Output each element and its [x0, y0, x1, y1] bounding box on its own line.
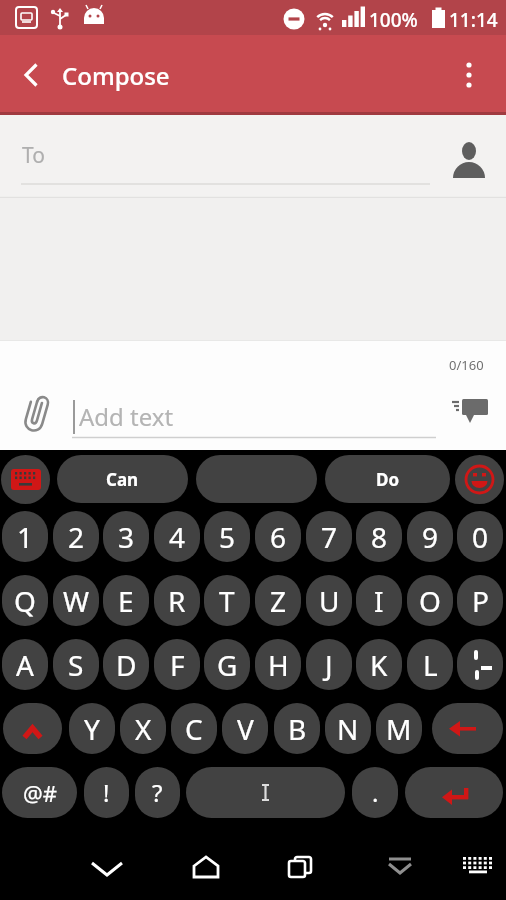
button[interactable]: N: [325, 703, 371, 754]
staticText: 11:14: [449, 7, 498, 33]
staticText: 4: [169, 518, 186, 556]
staticText: B: [288, 710, 307, 748]
button[interactable]: U: [306, 575, 352, 626]
button[interactable]: R: [154, 575, 200, 626]
staticText: M: [386, 710, 412, 748]
button[interactable]: [196, 455, 317, 503]
staticText: 9: [422, 518, 439, 556]
button[interactable]: 6: [255, 511, 301, 562]
button[interactable]: [378, 845, 422, 889]
button[interactable]: P: [457, 575, 503, 626]
button[interactable]: Z: [255, 575, 301, 626]
button[interactable]: [455, 455, 504, 504]
staticText: K: [370, 646, 388, 684]
staticText: Y: [84, 710, 100, 748]
button[interactable]: K: [356, 639, 402, 690]
button[interactable]: S: [53, 639, 99, 690]
button[interactable]: W: [53, 575, 99, 626]
staticText: W: [63, 582, 90, 620]
button[interactable]: 0: [457, 511, 503, 562]
button[interactable]: !: [84, 767, 129, 818]
staticText: .: [372, 776, 379, 809]
button[interactable]: A: [2, 639, 48, 690]
staticText: 0: [472, 518, 489, 556]
staticText: Q: [14, 582, 36, 620]
button[interactable]: 9: [407, 511, 453, 562]
button[interactable]: [456, 845, 500, 889]
button[interactable]: T: [204, 575, 250, 626]
button[interactable]: O: [407, 575, 453, 626]
staticText: @#: [23, 778, 57, 808]
staticText: To: [22, 141, 45, 170]
button[interactable]: [85, 845, 129, 889]
button[interactable]: 1: [2, 511, 48, 562]
button[interactable]: [448, 53, 492, 97]
staticText: 100%: [369, 7, 418, 33]
staticText: 3: [118, 518, 135, 556]
button[interactable]: I: [356, 575, 402, 626]
button[interactable]: [444, 392, 496, 436]
button[interactable]: To: [0, 115, 506, 198]
button[interactable]: L: [407, 639, 453, 690]
button[interactable]: Can: [57, 455, 188, 503]
button[interactable]: C: [171, 703, 217, 754]
button[interactable]: J: [306, 639, 352, 690]
button[interactable]: 2: [53, 511, 99, 562]
staticText: ?: [152, 776, 163, 809]
button[interactable]: X: [120, 703, 166, 754]
button[interactable]: @#: [2, 767, 77, 818]
button[interactable]: [278, 845, 322, 889]
staticText: D: [116, 646, 137, 684]
staticText: O: [419, 582, 441, 620]
button[interactable]: Do: [325, 455, 450, 503]
staticText: S: [68, 646, 84, 684]
staticText: 0/160: [449, 356, 484, 374]
staticText: F: [170, 646, 185, 684]
button[interactable]: Y: [69, 703, 115, 754]
button[interactable]: 8: [356, 511, 402, 562]
button[interactable]: M: [376, 703, 422, 754]
button[interactable]: E: [103, 575, 149, 626]
staticText: E: [118, 582, 134, 620]
button[interactable]: [432, 703, 503, 754]
button[interactable]: G: [204, 639, 250, 690]
button[interactable]: D: [103, 639, 149, 690]
button[interactable]: [14, 390, 62, 438]
button[interactable]: Q: [2, 575, 48, 626]
staticText: A: [16, 646, 34, 684]
button[interactable]: [186, 767, 345, 818]
button[interactable]: [405, 767, 503, 818]
button[interactable]: 3: [103, 511, 149, 562]
staticText: G: [217, 646, 238, 684]
button[interactable]: [457, 639, 503, 690]
button[interactable]: [184, 845, 228, 889]
button[interactable]: [1, 455, 50, 504]
button[interactable]: 4: [154, 511, 200, 562]
staticText: 6: [270, 518, 287, 556]
staticText: C: [185, 710, 203, 748]
staticText: N: [337, 710, 359, 748]
staticText: P: [472, 582, 489, 620]
button[interactable]: .: [352, 767, 398, 818]
staticText: 2: [68, 518, 85, 556]
staticText: V: [237, 710, 254, 748]
button[interactable]: F: [154, 639, 200, 690]
button[interactable]: 7: [306, 511, 352, 562]
staticText: Z: [270, 582, 287, 620]
staticText: H: [268, 646, 289, 684]
button[interactable]: 5: [204, 511, 250, 562]
staticText: T: [219, 582, 235, 620]
staticText: Can: [106, 468, 139, 491]
button[interactable]: [10, 53, 54, 97]
button[interactable]: V: [222, 703, 268, 754]
button[interactable]: [3, 703, 62, 754]
staticText: Add text: [79, 400, 174, 433]
staticText: R: [168, 582, 186, 620]
staticText: U: [319, 582, 340, 620]
button[interactable]: H: [255, 639, 301, 690]
button[interactable]: ?: [135, 767, 180, 818]
staticText: 1: [17, 518, 34, 556]
button[interactable]: B: [274, 703, 320, 754]
staticText: 5: [219, 518, 236, 556]
staticText: L: [423, 646, 438, 684]
